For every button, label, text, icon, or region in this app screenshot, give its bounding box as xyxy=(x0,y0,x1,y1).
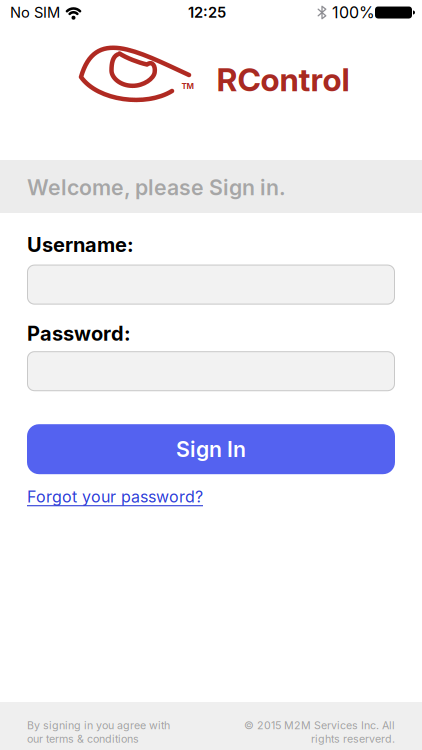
button[interactable]: Sign In xyxy=(27,424,395,474)
staticText: 100% xyxy=(332,3,375,22)
staticText: Password: xyxy=(27,322,131,345)
staticText: rights reserverd. xyxy=(311,733,395,745)
staticText: 12:25 xyxy=(188,4,226,21)
staticText: No SIM xyxy=(10,4,60,21)
staticText: our terms & conditions xyxy=(27,733,139,745)
staticText: Welcome, please Sign in. xyxy=(27,175,286,200)
staticText: © 2015 M2M Services Inc. All xyxy=(244,719,395,732)
button[interactable]: Forgot your password? xyxy=(27,487,203,506)
staticText: TM xyxy=(181,81,193,91)
staticText: RControl xyxy=(216,61,349,98)
staticText: Sign In xyxy=(176,437,246,462)
staticText: Username: xyxy=(27,233,134,257)
staticText: Forgot your password? xyxy=(27,487,203,506)
staticText: By signing in you agree with xyxy=(27,719,170,732)
